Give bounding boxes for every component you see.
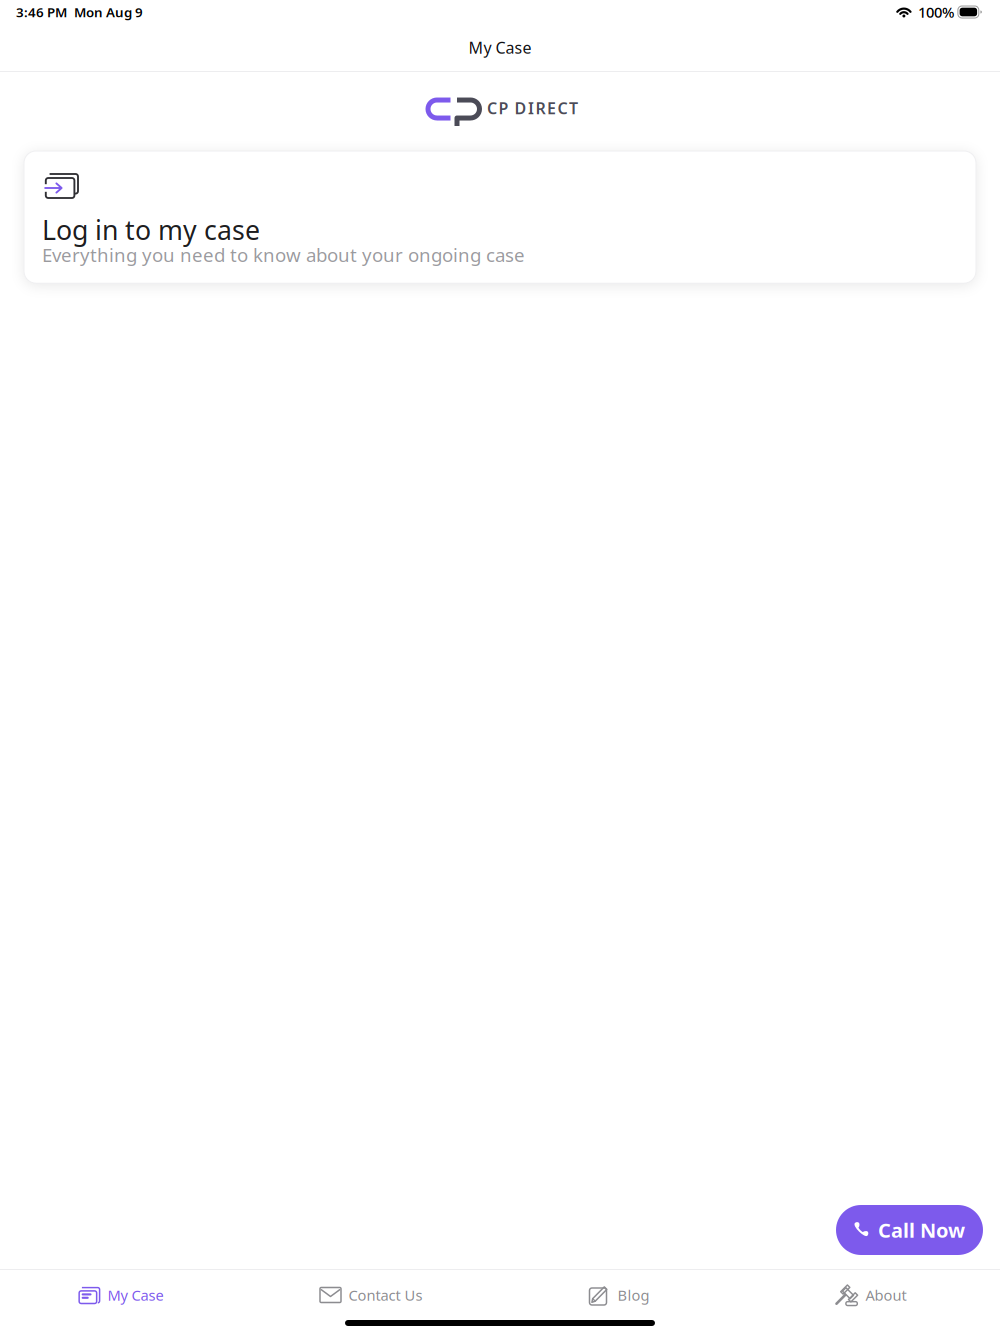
staticText: 100%	[918, 2, 954, 22]
staticText: Everything you need to know about your o…	[42, 242, 525, 267]
staticText: My Case	[468, 37, 531, 58]
staticText: Contact Us	[348, 1285, 422, 1305]
staticText: C	[487, 97, 497, 119]
staticText: Log in to my case	[42, 212, 260, 247]
staticText: About	[865, 1285, 906, 1305]
button[interactable]: Log in to my case	[24, 151, 976, 283]
button[interactable]: My Case	[0, 1270, 250, 1320]
staticText: Blog	[617, 1285, 649, 1305]
button[interactable]: Blog	[500, 1270, 750, 1320]
staticText: My Case	[107, 1285, 163, 1305]
staticText: Call Now	[878, 1217, 965, 1243]
staticText: R	[535, 97, 545, 119]
button[interactable]: Contact Us	[250, 1270, 500, 1320]
staticText: I	[528, 97, 534, 119]
staticText: C	[557, 97, 567, 119]
staticText: T	[569, 97, 578, 119]
staticText: Mon Aug 9	[74, 3, 143, 21]
button[interactable]: About	[750, 1270, 1000, 1320]
staticText: P	[498, 97, 508, 119]
staticText: 3:46 PM	[16, 3, 67, 21]
staticText: E	[547, 97, 556, 119]
button[interactable]: Call Now	[836, 1205, 983, 1255]
staticText: D	[514, 97, 526, 119]
